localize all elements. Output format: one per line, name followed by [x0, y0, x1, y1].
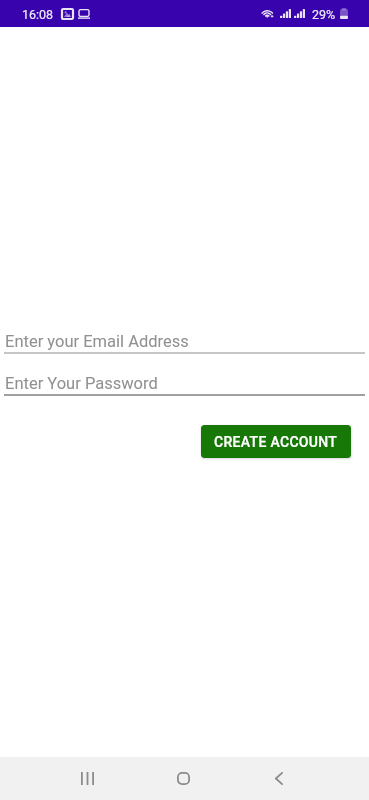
button[interactable]: Enter your Email Address — [4, 332, 365, 354]
button[interactable]: Home — [159, 757, 207, 800]
staticText: 29% — [312, 7, 336, 22]
button[interactable]: Back — [255, 757, 303, 800]
staticText: 16:08 — [22, 7, 54, 22]
staticText: Enter Your Password — [5, 374, 158, 393]
button[interactable]: CREATE ACCOUNT — [201, 425, 351, 458]
button[interactable]: Recent apps — [63, 757, 111, 800]
staticText: CREATE ACCOUNT — [214, 434, 338, 450]
staticText: Enter your Email Address — [5, 332, 189, 351]
button[interactable]: Enter Your Password — [4, 374, 365, 396]
